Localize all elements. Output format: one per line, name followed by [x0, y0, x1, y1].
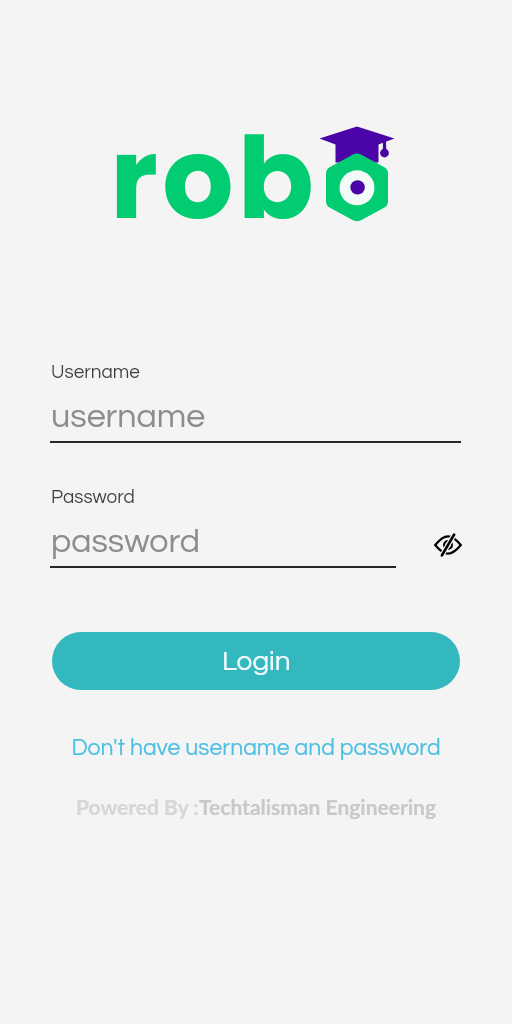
- staticText: rob: [110, 100, 318, 257]
- staticText: Techtalisman Engineering: [199, 794, 437, 819]
- staticText: Password: [51, 487, 135, 507]
- button[interactable]: username: [50, 394, 461, 443]
- staticText: Login: [222, 647, 291, 676]
- staticText: password: [51, 524, 200, 559]
- button[interactable]: password: [50, 519, 396, 568]
- staticText: Don't have username and password: [71, 736, 441, 760]
- button[interactable]: Show password: [424, 521, 472, 569]
- staticText: Powered By :: [76, 794, 199, 819]
- staticText: username: [51, 399, 206, 434]
- staticText: Username: [51, 362, 140, 382]
- button[interactable]: Login: [52, 632, 460, 690]
- button[interactable]: Don't have username and password: [0, 732, 512, 764]
